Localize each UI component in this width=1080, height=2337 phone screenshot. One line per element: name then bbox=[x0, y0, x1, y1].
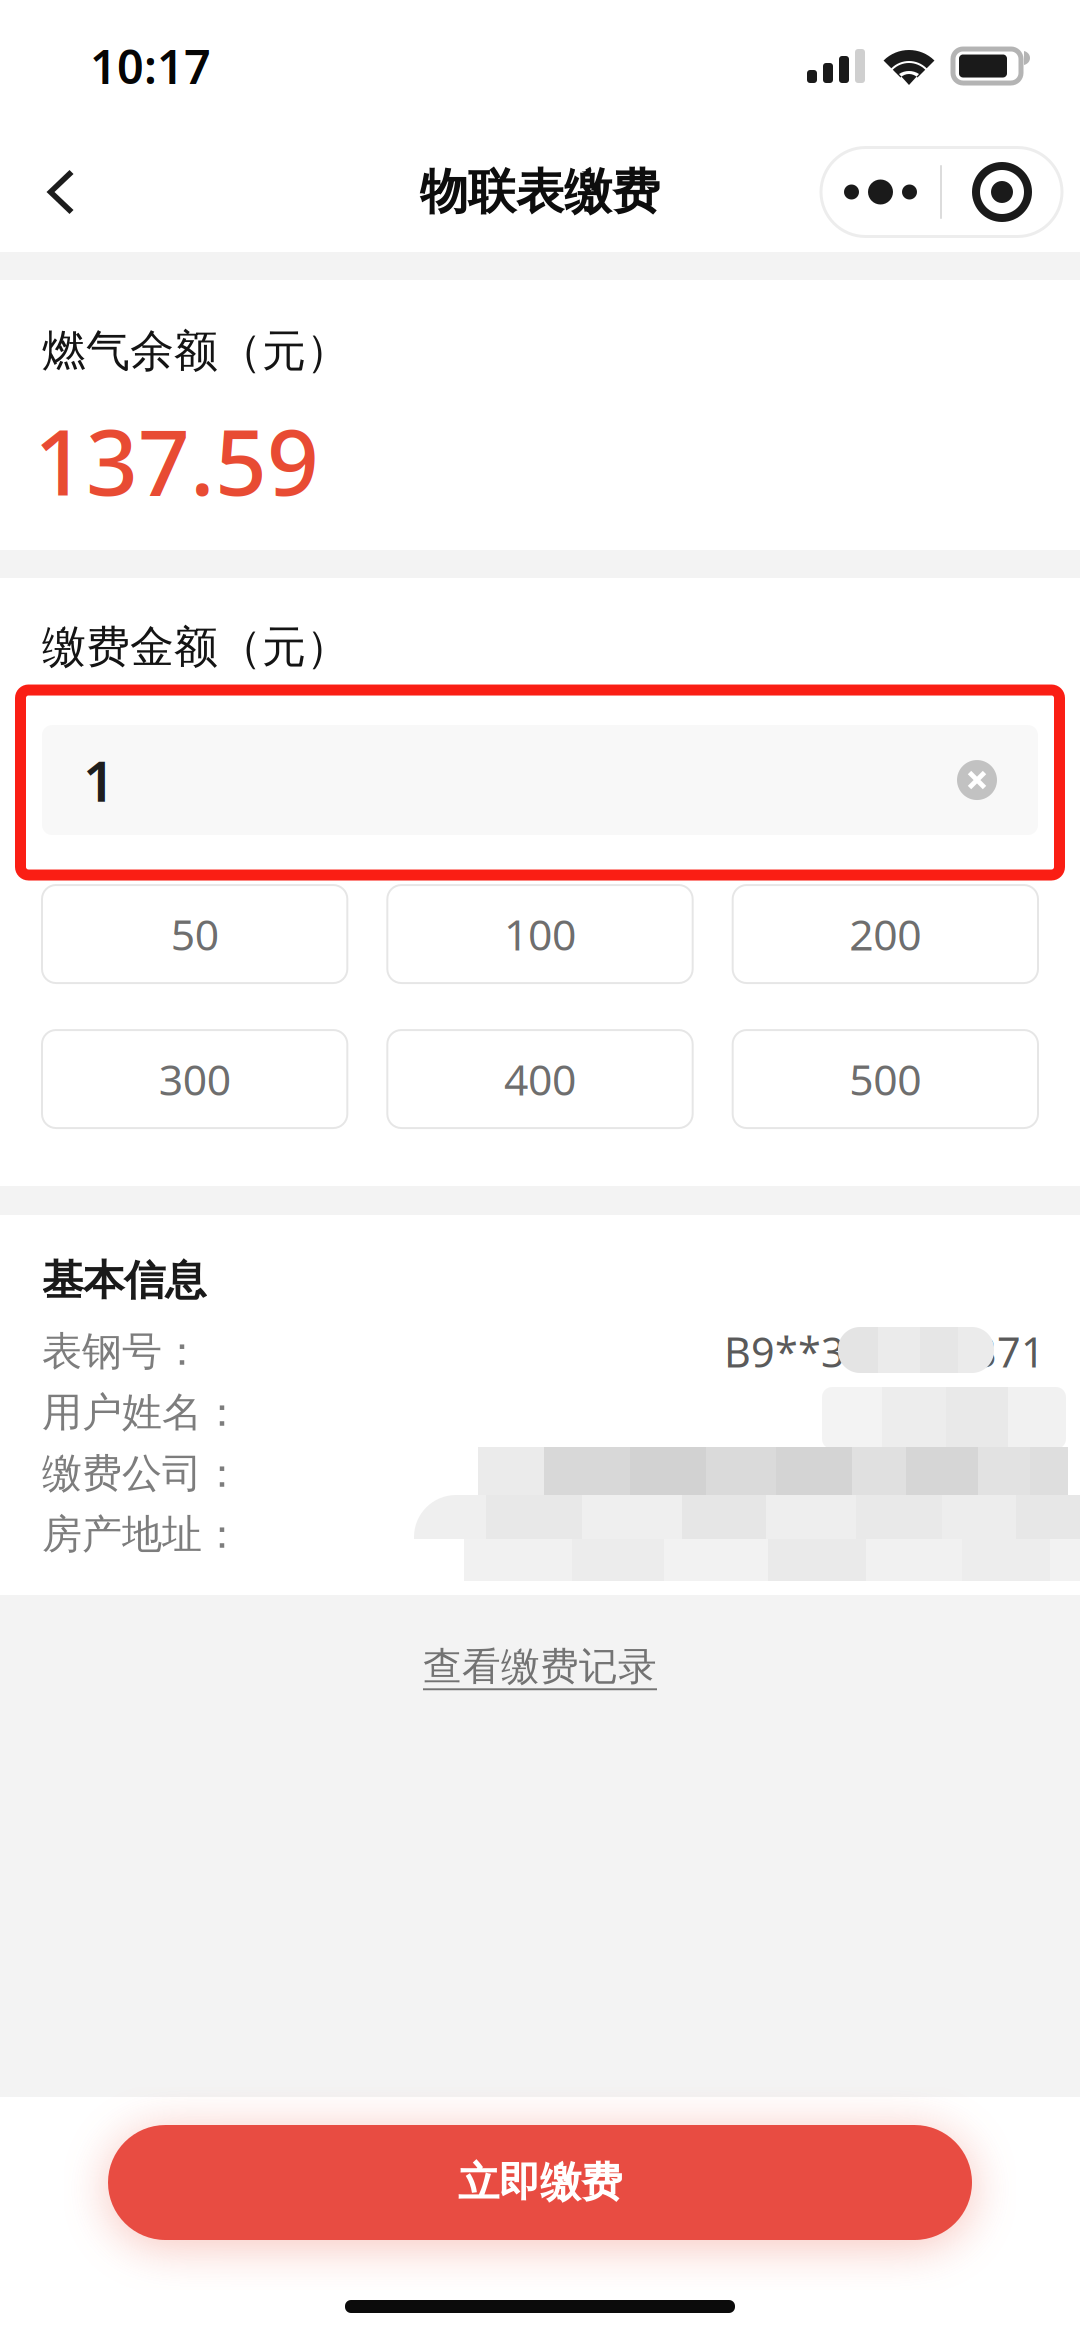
button[interactable]: 立即缴费 bbox=[108, 2125, 972, 2240]
button[interactable]: 查看缴费记录 bbox=[399, 1633, 681, 1700]
staticText: 1 bbox=[83, 743, 115, 817]
staticText: 房产地址： bbox=[42, 1510, 242, 1559]
button[interactable]: 400 bbox=[387, 1030, 693, 1128]
staticText: 100 bbox=[504, 906, 576, 962]
staticText: 基本信息 bbox=[42, 1255, 206, 1306]
staticText: 300 bbox=[159, 1051, 231, 1107]
staticText: 200 bbox=[849, 906, 921, 962]
staticText: 用户姓名： bbox=[42, 1388, 242, 1437]
button[interactable]: 300 bbox=[42, 1030, 347, 1128]
staticText: 500 bbox=[849, 1051, 921, 1107]
button[interactable]: 100 bbox=[387, 885, 693, 983]
staticText: 400 bbox=[504, 1051, 576, 1107]
staticText: B9**3 bbox=[724, 1324, 845, 1379]
staticText: 立即缴费 bbox=[458, 2157, 622, 2208]
button[interactable]: 返回 bbox=[12, 136, 108, 248]
button[interactable]: 500 bbox=[733, 1030, 1038, 1128]
button[interactable]: 更多 bbox=[821, 147, 940, 236]
staticText: 缴费金额（元） bbox=[42, 620, 350, 674]
button[interactable]: 200 bbox=[733, 885, 1038, 983]
staticText: 查看缴费记录 bbox=[423, 1643, 657, 1690]
staticText: 缴费公司： bbox=[42, 1449, 242, 1498]
staticText: 表钢号： bbox=[42, 1327, 202, 1376]
staticText: 10:17 bbox=[90, 35, 211, 97]
staticText: 燃气余额（元） bbox=[42, 324, 350, 378]
button[interactable]: 50 bbox=[42, 885, 347, 983]
button[interactable]: 清除 bbox=[957, 760, 997, 800]
staticText: 50 bbox=[171, 906, 219, 962]
button[interactable]: 关闭 bbox=[942, 147, 1062, 236]
staticText: 物联表缴费 bbox=[420, 162, 660, 221]
staticText: 371 bbox=[973, 1324, 1045, 1379]
staticText: 137.59 bbox=[34, 400, 319, 520]
